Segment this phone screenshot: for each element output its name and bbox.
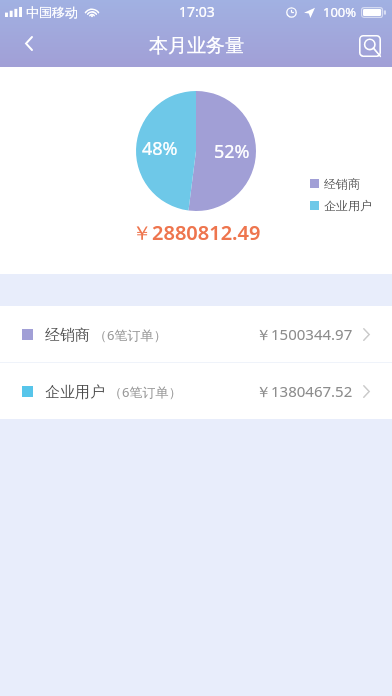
staticText: 企业用户 <box>45 383 105 402</box>
staticText: 48% <box>142 136 178 161</box>
staticText: 经销商 <box>45 326 90 345</box>
staticText: 100% <box>323 3 357 21</box>
staticText: 经销商 <box>324 176 360 191</box>
staticText: ￥1500344.97 <box>256 324 353 344</box>
button[interactable]: Back <box>0 24 46 67</box>
button[interactable]: 企业用户 <box>0 363 392 419</box>
staticText: （6笔订单） <box>109 383 182 401</box>
staticText: 17:03 <box>179 2 215 21</box>
button[interactable]: Search <box>348 24 392 67</box>
button[interactable]: 经销商 <box>0 306 392 362</box>
staticText: 中国移动 <box>26 4 78 20</box>
staticText: ￥2880812.49 <box>132 219 261 246</box>
staticText: （6笔订单） <box>94 326 167 344</box>
staticText: 本月业务量 <box>149 34 244 58</box>
staticText: 52% <box>214 139 250 164</box>
staticText: ￥1380467.52 <box>256 381 353 401</box>
staticText: 企业用户 <box>324 198 372 213</box>
